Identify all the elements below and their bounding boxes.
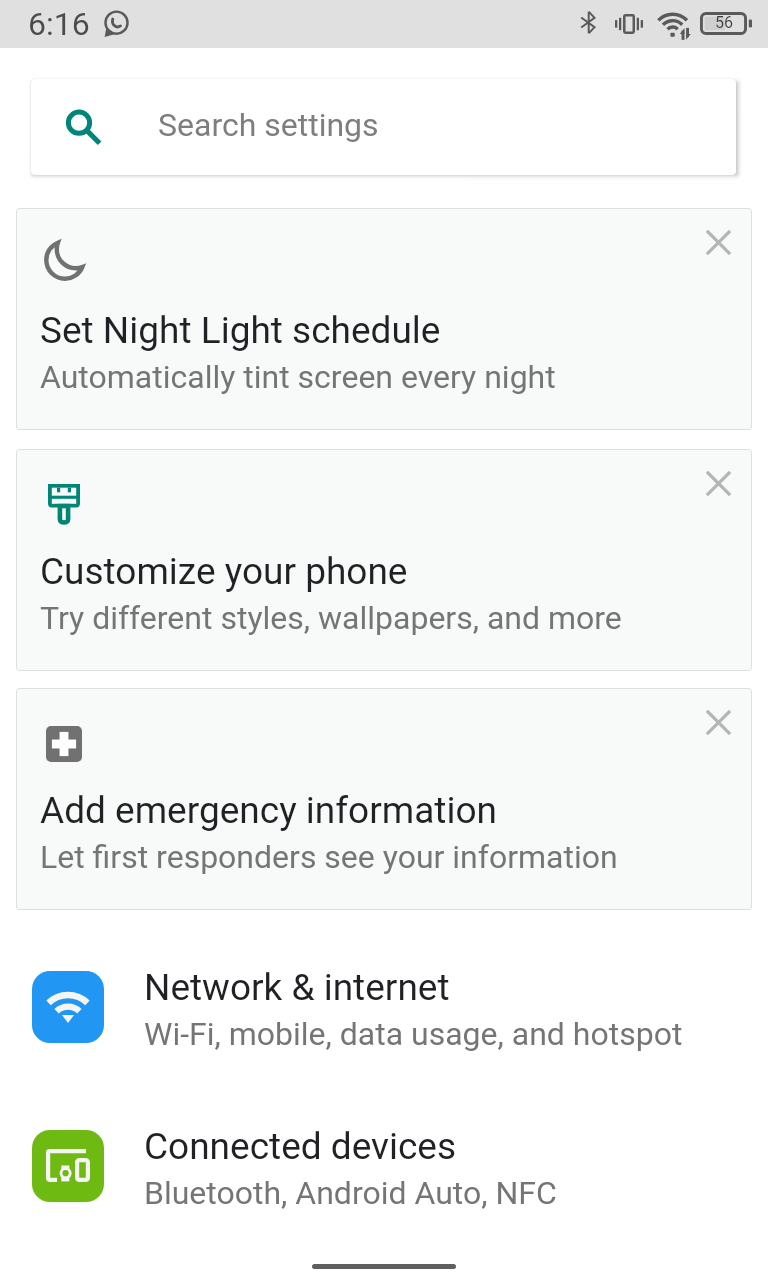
button[interactable]: Dismiss (684, 449, 752, 517)
staticText: Bluetooth, Android Auto, NFC (144, 1174, 557, 1212)
staticText: Let first responders see your informatio… (40, 838, 618, 876)
staticText: Network & internet (144, 966, 450, 1009)
staticText: Automatically tint screen every night (40, 358, 556, 396)
button[interactable]: Add emergency information (16, 688, 752, 910)
button[interactable]: Customize your phone (16, 449, 752, 671)
button[interactable]: Dismiss (684, 208, 752, 276)
staticText: 6:16 (28, 5, 90, 43)
button[interactable]: Network & internet (0, 946, 768, 1073)
staticText: Wi-Fi, mobile, data usage, and hotspot (144, 1015, 683, 1053)
staticText: Try different styles, wallpapers, and mo… (40, 599, 622, 637)
other: Search (65, 109, 101, 145)
other: WhatsApp notification (102, 9, 131, 38)
staticText: Connected devices (144, 1125, 457, 1168)
button[interactable]: Set Night Light schedule (16, 208, 752, 430)
button[interactable]: Dismiss (684, 688, 752, 756)
staticText: Search settings (158, 106, 379, 144)
button[interactable]: Connected devices (0, 1105, 768, 1232)
staticText: Set Night Light schedule (40, 309, 441, 352)
staticText: Add emergency information (40, 789, 497, 832)
staticText: 56 (704, 13, 744, 32)
button[interactable]: Search (31, 79, 736, 175)
staticText: Customize your phone (40, 550, 408, 593)
